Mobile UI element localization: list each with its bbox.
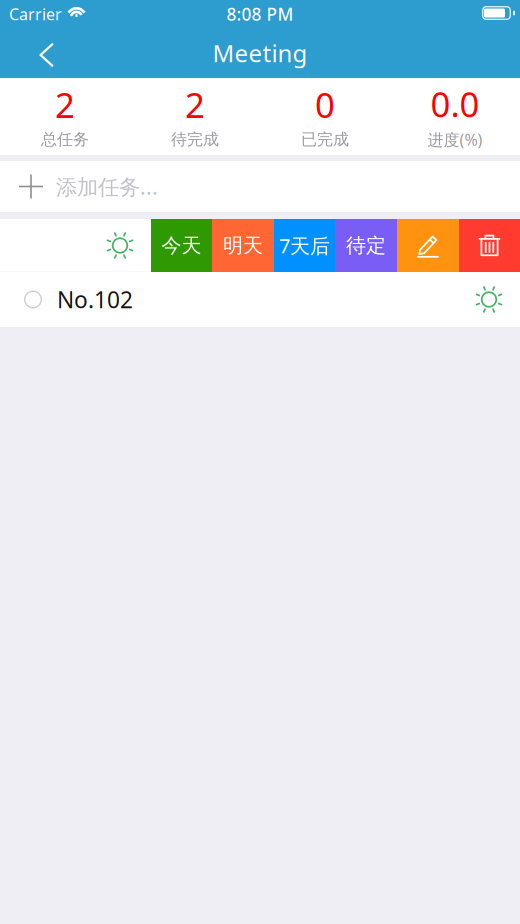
staticText: 已完成: [301, 130, 349, 149]
staticText: No.102: [57, 284, 133, 314]
staticText: 0.0: [430, 81, 479, 127]
staticText: 明天: [223, 233, 263, 258]
button[interactable]: 添加任务...: [0, 161, 520, 212]
staticText: 2: [55, 82, 75, 128]
staticText: 2: [185, 82, 205, 128]
button[interactable]: Edit: [397, 219, 459, 272]
button[interactable]: 7天后: [274, 219, 335, 272]
staticText: 0: [315, 82, 335, 128]
staticText: 8:08 PM: [226, 2, 293, 25]
staticText: Carrier: [9, 3, 62, 25]
button[interactable]: No.102: [0, 272, 520, 327]
staticText: 今天: [161, 233, 201, 258]
staticText: 7天后: [279, 232, 330, 259]
staticText: 总任务: [41, 130, 89, 149]
button[interactable]: 待定: [335, 219, 397, 272]
staticText: 进度(%): [427, 129, 482, 150]
button[interactable]: Delete: [459, 219, 520, 272]
staticText: 添加任务...: [56, 172, 158, 201]
button[interactable]: 明天: [212, 219, 274, 272]
staticText: 待完成: [171, 130, 219, 149]
button[interactable]: 今天: [151, 219, 212, 272]
staticText: 待定: [346, 233, 386, 258]
button[interactable]: Back: [20, 32, 72, 78]
staticText: Meeting: [212, 37, 307, 69]
